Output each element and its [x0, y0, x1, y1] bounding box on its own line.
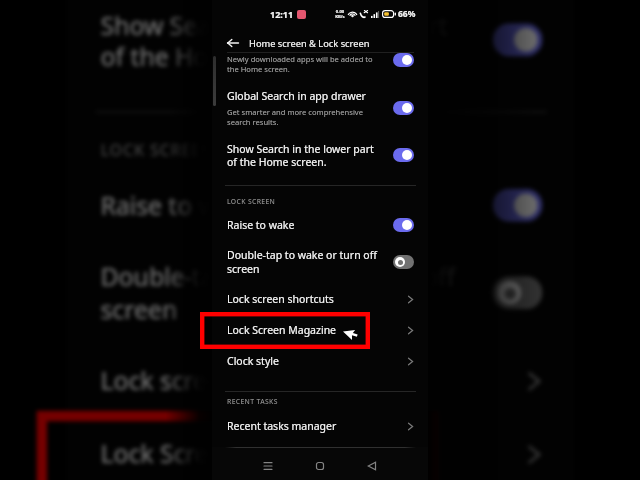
- staticText: Lock screen shortcuts: [227, 292, 407, 306]
- staticText: Home screen & Lock screen: [249, 37, 370, 50]
- button[interactable]: Back: [227, 35, 239, 51]
- staticText: Clock style: [227, 354, 407, 368]
- staticText: 66%: [398, 8, 416, 20]
- button[interactable]: Lock Screen Magazine: [200, 312, 370, 349]
- button[interactable]: Lock screen shortcuts: [212, 288, 428, 310]
- staticText: Recent tasks manager: [227, 419, 407, 433]
- staticText: Double-tap to wake or turn off screen: [100, 260, 455, 328]
- button[interactable]: Raise to wake: [65, 179, 575, 231]
- staticText: Double-tap to wake or turn off screen: [227, 248, 377, 277]
- other: Open: [526, 442, 542, 468]
- button[interactable]: Switch off: [493, 276, 542, 309]
- other: Open: [407, 356, 414, 367]
- button[interactable]: Switch off: [393, 255, 414, 269]
- button[interactable]: Recent tasks manager: [212, 415, 428, 437]
- staticText: Get smarter and more comprehensive searc…: [227, 107, 364, 127]
- staticText: Lock Screen Magazine: [100, 437, 526, 470]
- staticText: Raise to wake: [227, 218, 393, 232]
- button[interactable]: Lock screen shortcuts: [65, 354, 575, 406]
- button[interactable]: Switch on: [493, 189, 542, 222]
- staticText: LOCK SCREEN: [100, 139, 216, 160]
- staticText: Newly downloaded apps will be added to t…: [227, 54, 373, 74]
- button[interactable]: Lock Screen Magazine: [65, 427, 575, 479]
- button[interactable]: Home: [310, 456, 330, 476]
- staticText: RECENT TASKS: [227, 397, 278, 406]
- other: Open: [526, 368, 542, 394]
- staticText: Show Search in the lower part of the Hom…: [100, 9, 448, 73]
- staticText: Global Search in app drawer: [227, 89, 366, 103]
- staticText: 0.00 KB/s: [335, 9, 345, 19]
- staticText: Lock Screen Magazine: [227, 323, 407, 337]
- staticText: Lock screen shortcuts: [100, 364, 526, 397]
- staticText: 12:11: [270, 8, 294, 20]
- button[interactable]: Raise to wake: [212, 214, 428, 236]
- other: Open: [407, 325, 414, 336]
- button[interactable]: Switch on: [393, 218, 414, 232]
- button[interactable]: Clock style: [212, 350, 428, 372]
- button[interactable]: Switch on: [493, 23, 542, 56]
- staticText: Show Search in the lower part of the Hom…: [227, 142, 374, 169]
- button[interactable]: Switch on: [393, 148, 414, 162]
- staticText: LOCK SCREEN: [227, 197, 276, 206]
- button[interactable]: Switch on: [393, 101, 414, 115]
- other: Open: [407, 294, 414, 305]
- button[interactable]: Recent apps: [258, 456, 278, 476]
- other: Open: [407, 421, 414, 432]
- button[interactable]: Lock Screen Magazine: [212, 319, 428, 341]
- staticText: Raise to wake: [100, 189, 493, 222]
- button[interactable]: Switch on: [393, 53, 414, 67]
- button[interactable]: Back: [362, 456, 382, 476]
